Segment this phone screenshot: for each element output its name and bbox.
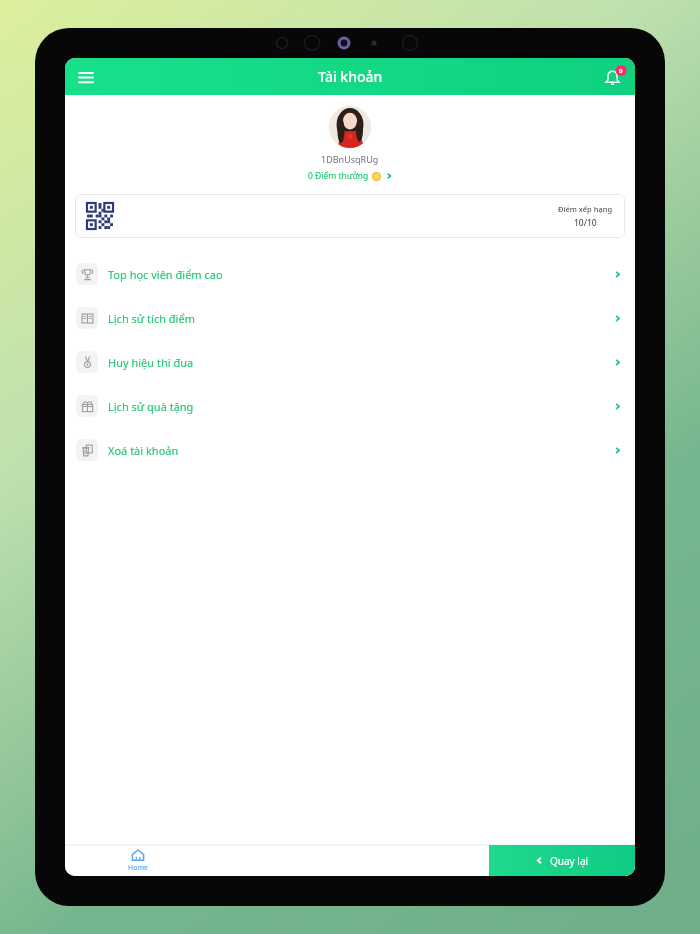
staticText: Huy hiệu thi đua [108,355,194,370]
staticText: Điểm xếp hạng [558,204,613,214]
button[interactable]: Lịch sử tích điểm [65,296,635,340]
staticText: Lịch sử quà tặng [108,399,194,414]
staticText: Xoá tài khoản [108,443,179,458]
button[interactable]: Home [120,846,156,875]
staticText: Lịch sử tích điểm [108,311,195,326]
button[interactable]: Xoá tài khoản [65,428,635,472]
button[interactable]: Notifications [600,63,628,91]
button[interactable]: Top học viên điểm cao [65,252,635,296]
staticText: 0 [619,67,623,75]
staticText: 0 Điểm thưởng [308,170,369,182]
button[interactable]: Profile photo [329,106,371,148]
button[interactable]: Quay lại [489,845,635,876]
staticText: Top học viên điểm cao [108,267,223,282]
button[interactable]: 0 Điểm thưởng [305,169,396,183]
staticText: 1DBnUsqRUg [321,153,379,165]
staticText: Tài khoản [318,67,383,86]
staticText: Quay lại [550,854,589,868]
staticText: Home [128,863,148,873]
button[interactable]: Điểm xếp hạng [75,194,625,238]
button[interactable]: Menu [72,63,100,91]
button[interactable]: Lịch sử quà tặng [65,384,635,428]
button[interactable]: Huy hiệu thi đua [65,340,635,384]
staticText: 10/10 [574,217,597,229]
